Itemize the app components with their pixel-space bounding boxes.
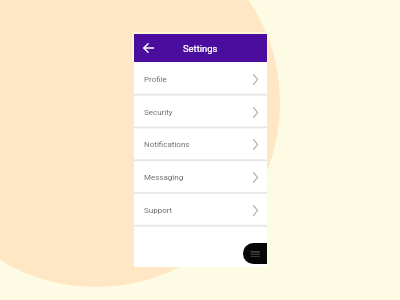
- staticText: Settings: [183, 43, 218, 54]
- button[interactable]: Menu: [243, 243, 267, 264]
- button[interactable]: Security: [134, 95, 267, 128]
- button[interactable]: Profile: [134, 62, 267, 95]
- staticText: Security: [144, 108, 173, 117]
- staticText: Messaging: [144, 173, 184, 182]
- staticText: Support: [144, 206, 173, 215]
- button[interactable]: Back: [138, 38, 158, 58]
- button[interactable]: Support: [134, 193, 267, 226]
- button[interactable]: Notifications: [134, 127, 267, 160]
- button[interactable]: Messaging: [134, 160, 267, 193]
- staticText: Profile: [144, 75, 167, 84]
- staticText: Notifications: [144, 140, 190, 149]
